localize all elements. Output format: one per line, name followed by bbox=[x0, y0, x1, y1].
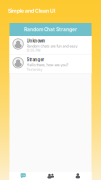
staticText: Random chats are fun and easy bbox=[26, 44, 77, 48]
button[interactable]: Unknown bbox=[9, 36, 91, 54]
staticText: Random Chat Stranger bbox=[24, 27, 77, 32]
staticText: Simple and Clean UI bbox=[8, 7, 55, 14]
staticText: Yesterday bbox=[26, 67, 42, 71]
staticText: Hello there, how are you? bbox=[26, 63, 68, 67]
staticText: Unknown bbox=[26, 38, 45, 43]
button[interactable]: Chats bbox=[9, 172, 37, 180]
button[interactable]: Stranger bbox=[9, 55, 91, 73]
staticText: 12:05 PM bbox=[26, 49, 40, 53]
staticText: Stranger bbox=[26, 57, 44, 62]
button[interactable]: Profile bbox=[64, 172, 91, 180]
button[interactable]: People bbox=[37, 172, 64, 180]
